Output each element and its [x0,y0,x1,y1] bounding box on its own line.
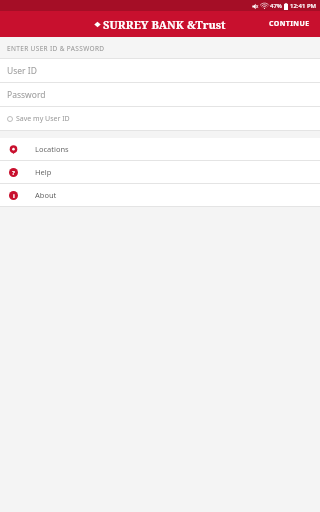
staticText: i [13,192,15,200]
staticText: Save my User ID [16,114,70,124]
staticText: Password [7,89,46,101]
staticText: 12:41 PM [290,2,317,10]
staticText: ENTER USER ID & PASSWORD [7,44,105,53]
staticText: User ID [7,65,37,77]
staticText: CONTINUE [269,19,310,29]
other: About [9,191,18,200]
staticText: Locations [35,144,69,154]
button[interactable]: Password [0,83,320,106]
staticText: About [35,190,57,200]
button[interactable]: CONTINUE [259,13,320,35]
button[interactable]: Save my User ID [0,107,320,130]
staticText: 47% [270,2,282,10]
button[interactable]: User ID [0,59,320,82]
button[interactable]: Help [0,161,320,183]
staticText: SURREY BANK [103,17,184,32]
staticText: ? [12,169,15,177]
staticText: Help [35,167,52,177]
button[interactable]: About [0,184,320,206]
staticText: &Trust [187,17,226,32]
other: Locations [9,145,18,154]
other: Help [9,168,18,177]
button[interactable]: Locations [0,138,320,160]
